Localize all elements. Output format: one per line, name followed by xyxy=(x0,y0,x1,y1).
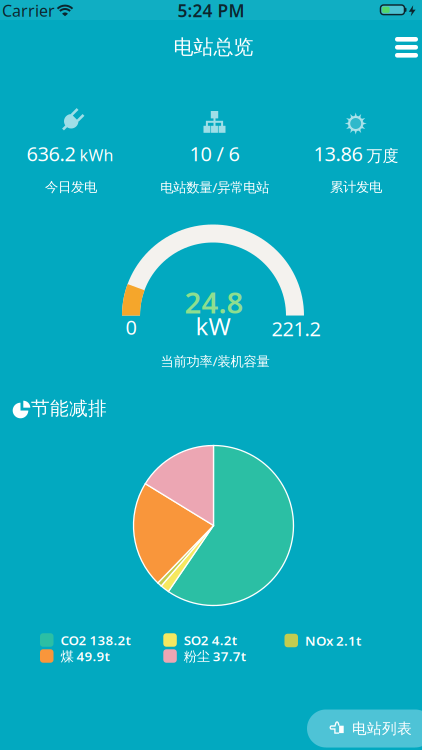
staticText: 煤 49.9t xyxy=(60,647,109,665)
button[interactable] xyxy=(386,27,422,67)
staticText: CO2 138.2t xyxy=(60,631,130,649)
staticText: kW xyxy=(195,310,230,342)
staticText: SO2 4.2t xyxy=(184,631,237,649)
staticText: 节能减排 xyxy=(31,397,107,420)
staticText: 5:24 PM xyxy=(177,0,244,22)
button[interactable]: 电站列表 xyxy=(307,709,422,747)
staticText: 0 xyxy=(125,314,136,340)
staticText: 粉尘 37.7t xyxy=(184,647,246,665)
staticText: 13.86 xyxy=(313,140,362,167)
staticText: 万度 xyxy=(366,146,398,166)
staticText: 电站列表 xyxy=(352,719,412,737)
staticText: 当前功率/装机容量 xyxy=(160,352,269,370)
staticText: 累计发电 xyxy=(330,179,382,195)
staticText: 636.2 xyxy=(26,140,75,167)
staticText: 10 / 6 xyxy=(189,140,239,167)
staticText: Carrier xyxy=(2,0,55,21)
staticText: 电站数量/异常电站 xyxy=(160,178,269,196)
staticText: NOx 2.1t xyxy=(305,632,361,649)
staticText: 今日发电 xyxy=(45,179,97,195)
staticText: 24.8 xyxy=(184,282,243,321)
staticText: 电站总览 xyxy=(173,35,253,59)
staticText: 221.2 xyxy=(271,315,320,342)
staticText: kWh xyxy=(79,144,113,166)
